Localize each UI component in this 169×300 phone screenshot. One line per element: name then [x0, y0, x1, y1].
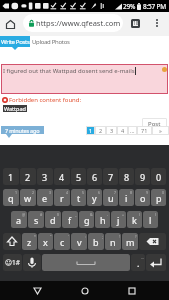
- button[interactable]: 0: [151, 168, 166, 185]
- staticText: d: [50, 214, 56, 226]
- button[interactable]: 4: [117, 126, 128, 135]
- button[interactable]: r: [54, 189, 70, 206]
- button[interactable]: 3: [37, 168, 53, 185]
- staticText: b: [93, 236, 99, 248]
- staticText: 4: [59, 171, 65, 183]
- button[interactable]: Back: [26, 281, 48, 300]
- staticText: j: [117, 214, 120, 226]
- button[interactable]: m: [122, 233, 138, 250]
- staticText: &: [90, 212, 93, 217]
- staticText: 6: [98, 190, 101, 195]
- staticText: 9: [140, 171, 146, 183]
- staticText: -: [107, 212, 109, 217]
- button[interactable]: 1: [86, 126, 95, 135]
- staticText: k: [132, 214, 137, 226]
- staticText: ?: [135, 234, 137, 239]
- button[interactable]: 6: [87, 168, 102, 185]
- staticText: Upload Photos: [32, 38, 70, 46]
- staticText: 18: [133, 20, 139, 27]
- button[interactable]: d: [45, 211, 61, 228]
- button[interactable]: t: [71, 189, 86, 206]
- button[interactable]: More options: [150, 16, 164, 30]
- button[interactable]: 7: [103, 168, 118, 185]
- staticText: ): [155, 212, 157, 217]
- button[interactable]: a: [11, 211, 27, 228]
- button[interactable]: n: [105, 233, 121, 250]
- button[interactable]: 71: [137, 126, 152, 135]
- button[interactable]: b: [88, 233, 104, 250]
- staticText: s: [34, 214, 39, 226]
- staticText: 0: [162, 190, 165, 195]
- button[interactable]: y: [87, 189, 102, 206]
- button[interactable]: Upload Photos: [32, 36, 70, 47]
- button[interactable]: l: [143, 211, 158, 228]
- staticText: 3: [49, 190, 52, 195]
- button[interactable]: Tabs: [129, 17, 141, 29]
- button[interactable]: j: [111, 211, 126, 228]
- button[interactable]: ...: [128, 126, 137, 135]
- button[interactable]: z: [22, 233, 37, 250]
- staticText: 7: [108, 171, 114, 183]
- button[interactable]: Home: [3, 17, 17, 31]
- staticText: 29%: [123, 2, 136, 11]
- staticText: .: [137, 257, 140, 269]
- staticText: l: [149, 214, 152, 226]
- staticText: ...: [130, 127, 135, 134]
- button[interactable]: Space: [42, 254, 130, 271]
- button[interactable]: p: [151, 189, 166, 206]
- button[interactable]: u: [103, 189, 118, 206]
- staticText: _: [75, 212, 77, 217]
- staticText: 5: [82, 190, 85, 195]
- staticText: 2: [25, 171, 31, 183]
- button[interactable]: 3: [106, 126, 117, 135]
- button[interactable]: f: [62, 211, 78, 228]
- button[interactable]: 1: [3, 168, 19, 185]
- staticText: 8:57 PM: [143, 2, 167, 11]
- staticText: I figured out that Wattpad dosent send e…: [3, 67, 135, 75]
- button[interactable]: 9: [135, 168, 150, 185]
- staticText: Post: [148, 120, 161, 128]
- staticText: 3: [42, 171, 48, 183]
- button[interactable]: Post: [142, 118, 167, 130]
- button[interactable]: e: [37, 189, 53, 206]
- button[interactable]: 8: [119, 168, 134, 185]
- staticText: ": [50, 234, 52, 239]
- staticText: Wattpad: [4, 105, 26, 112]
- button[interactable]: q: [3, 189, 19, 206]
- staticText: (: [139, 212, 141, 217]
- button[interactable]: Write Posts: [0, 36, 30, 47]
- button[interactable]: g: [79, 211, 94, 228]
- staticText: 1: [15, 190, 18, 195]
- staticText: 2: [32, 190, 35, 195]
- button[interactable]: w: [20, 189, 36, 206]
- button[interactable]: .: [131, 254, 145, 271]
- button[interactable]: Symbols and emoji: [3, 254, 22, 271]
- button[interactable]: s: [28, 211, 44, 228]
- button[interactable]: Enter: [146, 254, 166, 271]
- button[interactable]: 2: [20, 168, 36, 185]
- staticText: e: [42, 192, 48, 204]
- button[interactable]: c: [54, 233, 70, 250]
- staticText: v: [77, 236, 82, 248]
- staticText: #: [40, 212, 43, 217]
- button[interactable]: k: [127, 211, 142, 228]
- button[interactable]: 2: [95, 126, 106, 135]
- staticText: h: [100, 214, 106, 226]
- staticText: 2: [99, 127, 103, 134]
- staticText: w: [24, 192, 32, 204]
- staticText: t: [77, 192, 81, 204]
- button[interactable]: 5: [71, 168, 86, 185]
- button[interactable]: https://www.qfeast.com: [23, 14, 123, 32]
- button[interactable]: Home: [74, 281, 96, 300]
- button[interactable]: Shift: [3, 233, 21, 250]
- button[interactable]: i: [119, 189, 134, 206]
- button[interactable]: h: [95, 211, 110, 228]
- button[interactable]: x: [38, 233, 53, 250]
- button[interactable]: Recents: [121, 281, 143, 300]
- button[interactable]: 4: [54, 168, 70, 185]
- button[interactable]: Backspace: [139, 233, 166, 250]
- button[interactable]: Voice input: [23, 254, 41, 271]
- button[interactable]: v: [71, 233, 87, 250]
- button[interactable]: »: [152, 126, 169, 135]
- button[interactable]: o: [135, 189, 150, 206]
